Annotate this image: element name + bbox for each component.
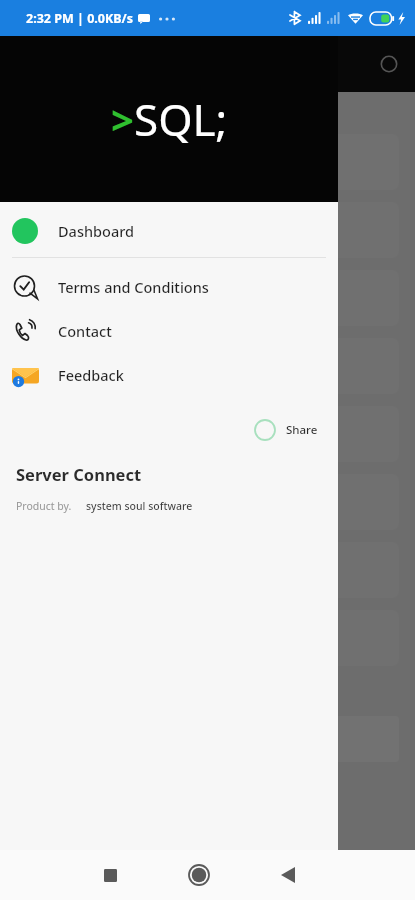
staticText: system soul software [86, 499, 193, 513]
button[interactable]: Dashboard [0, 209, 338, 253]
staticText: Product by. [16, 499, 72, 513]
button[interactable]: Feedback [0, 353, 338, 397]
button[interactable]: Back [266, 853, 310, 897]
staticText: Server Connect [16, 463, 142, 485]
staticText: Contact [58, 321, 112, 341]
button[interactable]: Recent apps [88, 853, 132, 897]
staticText: Feedback [58, 365, 124, 385]
button[interactable]: More [377, 52, 401, 76]
staticText: > [111, 92, 134, 146]
button[interactable]: Share [240, 411, 332, 449]
button[interactable]: Add Connection [16, 716, 399, 762]
staticText: 2:32 PM | 0.0KB/s [26, 10, 134, 27]
staticText: Share [286, 422, 318, 438]
staticText: SQL; [134, 89, 228, 149]
button[interactable]: Terms and Conditions [0, 265, 338, 309]
staticText: Terms and Conditions [58, 277, 209, 297]
staticText: Dashboard [58, 221, 135, 241]
button[interactable]: Contact [0, 309, 338, 353]
button[interactable]: Home [177, 853, 221, 897]
